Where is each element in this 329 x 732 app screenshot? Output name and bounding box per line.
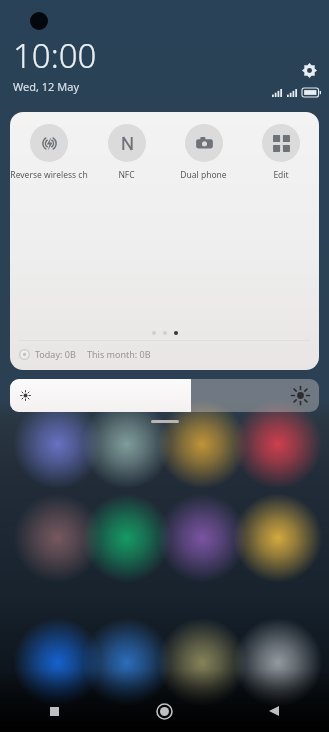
staticText: Edit: [273, 169, 289, 181]
staticText: Reverse wireless ch: [10, 169, 88, 181]
staticText: Dual phone: [180, 169, 227, 181]
button[interactable]: NFC: [88, 124, 165, 181]
staticText: This month: 0B: [87, 348, 151, 360]
staticText: NFC: [118, 169, 135, 181]
button[interactable]: Home: [109, 690, 219, 732]
staticText: 10:00: [13, 33, 97, 78]
button[interactable]: Recents: [0, 690, 109, 732]
button[interactable]: Edit: [242, 124, 319, 181]
button[interactable]: Reverse wireless ch: [10, 124, 88, 181]
button[interactable]: Back: [219, 690, 329, 732]
button[interactable]: Today: 0B: [10, 341, 319, 367]
button[interactable]: Dual phone: [165, 124, 242, 181]
staticText: Wed, 12 May: [13, 79, 79, 94]
button[interactable]: [10, 379, 319, 412]
button[interactable]: Settings: [296, 57, 322, 83]
staticText: Today: 0B: [35, 348, 76, 360]
